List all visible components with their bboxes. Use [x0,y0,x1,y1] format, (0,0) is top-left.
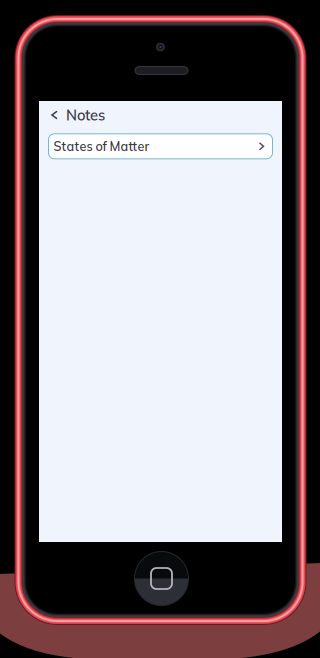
staticText: States of Matter [53,138,149,154]
staticText: Notes [66,106,105,124]
button[interactable]: States of Matter [48,134,272,159]
button[interactable]: Notes [52,104,144,126]
